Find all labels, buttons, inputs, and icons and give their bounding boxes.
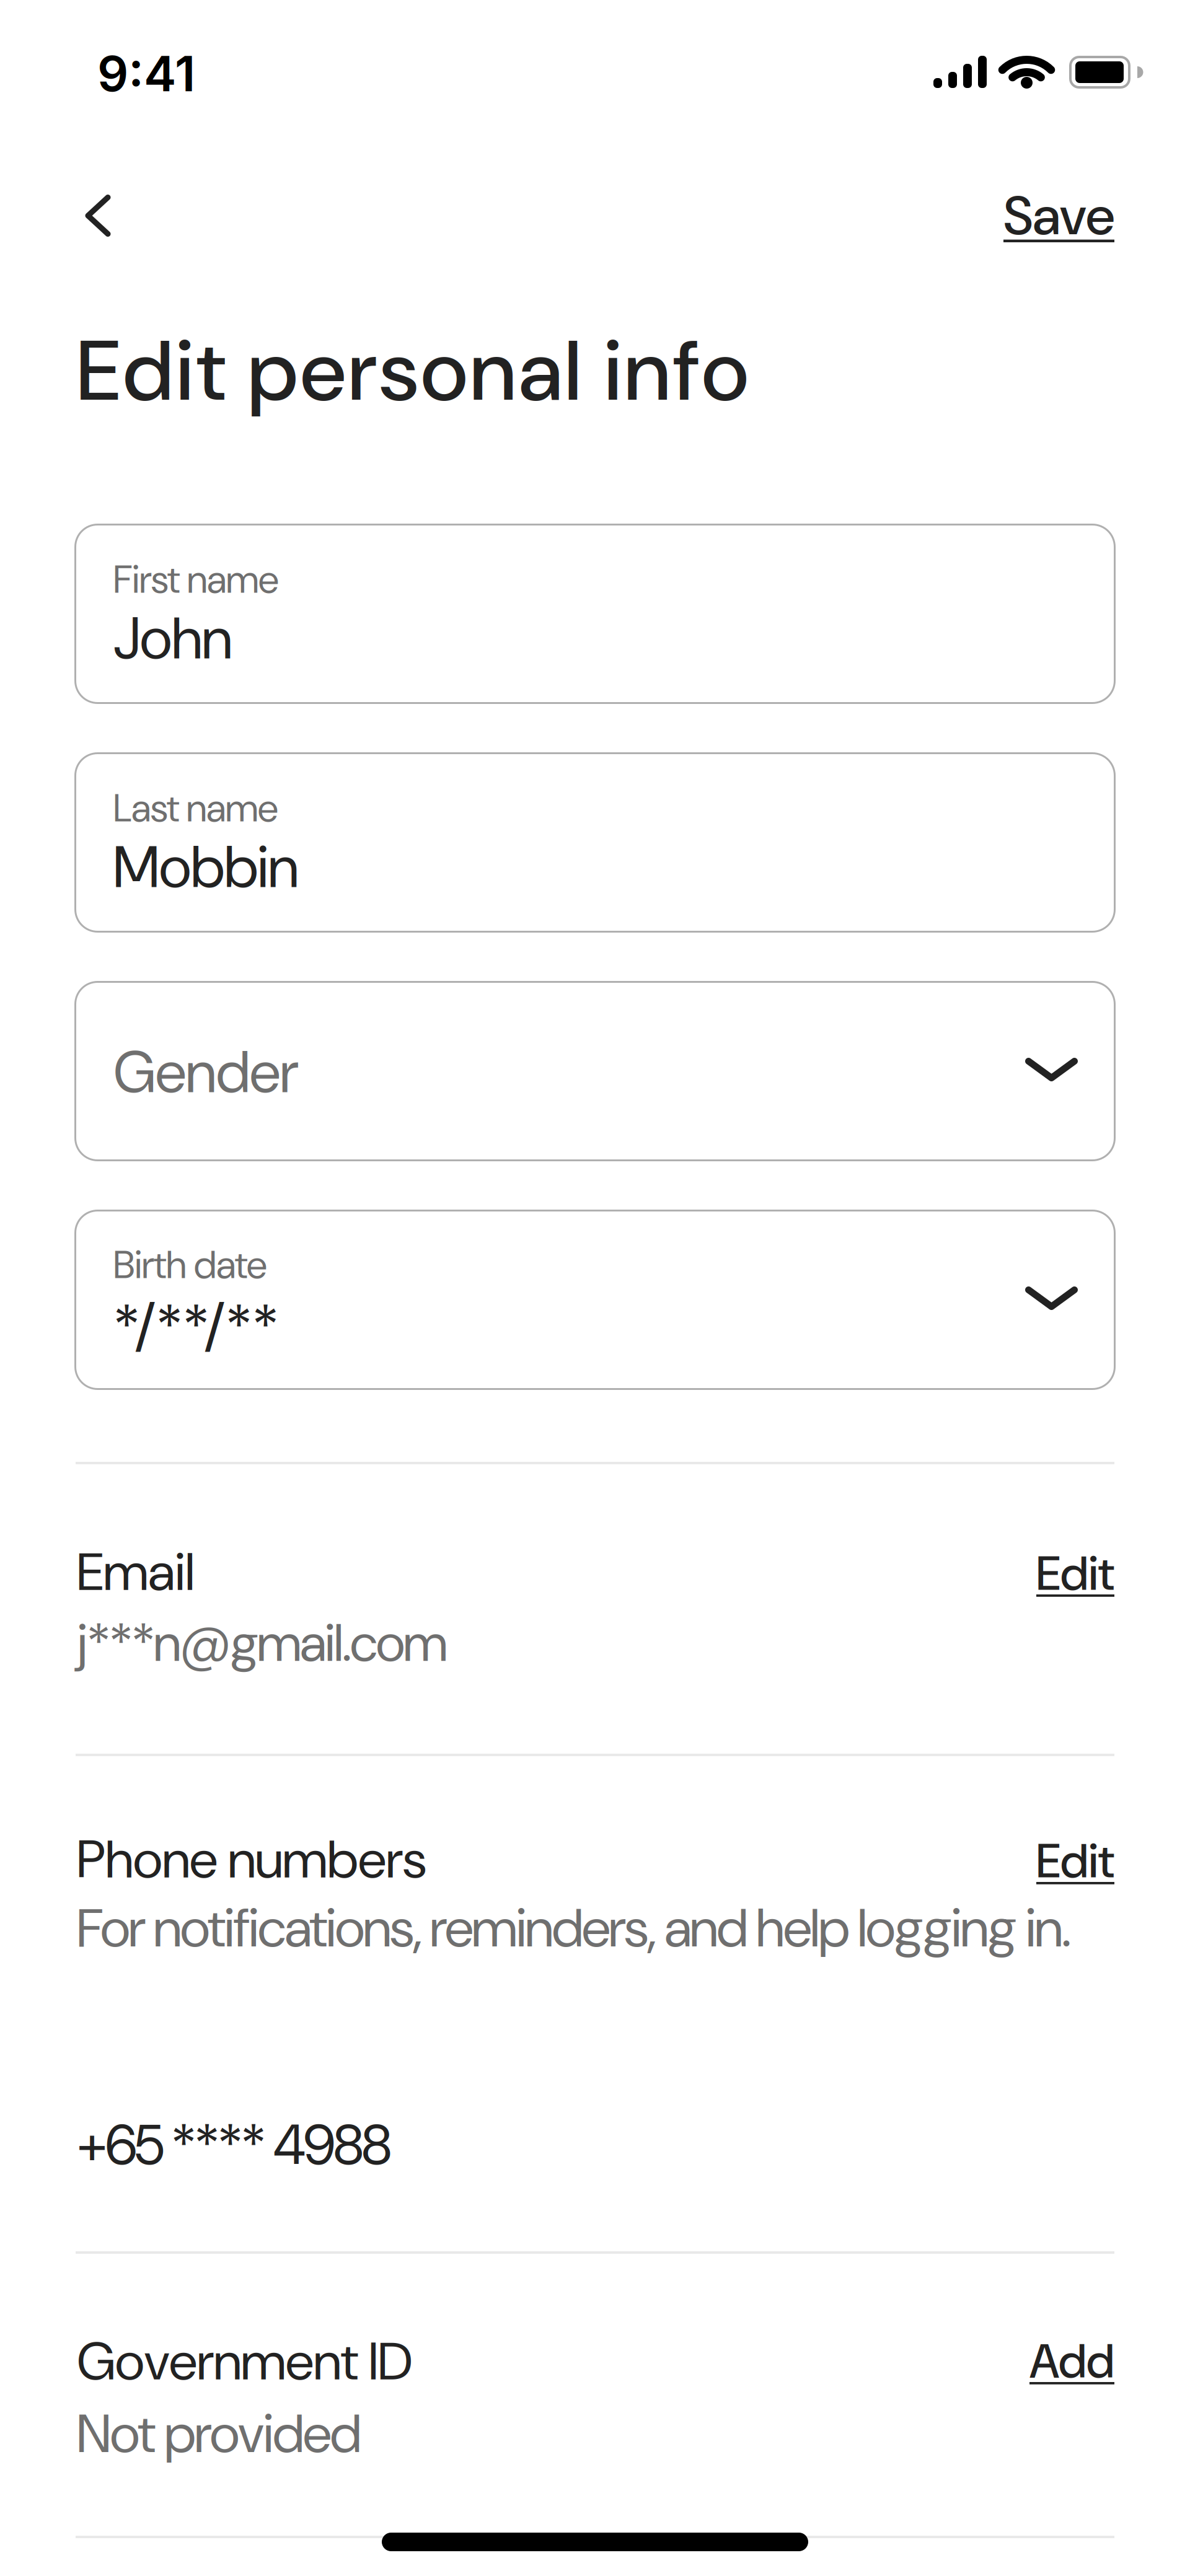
button[interactable]: Gender (74, 981, 1116, 1161)
staticText: Edit personal info (77, 316, 748, 426)
staticText: For notifications, reminders, and help l… (77, 1893, 1071, 1963)
button[interactable]: Birth date (74, 1210, 1116, 1390)
button[interactable]: Edit (1036, 1543, 1114, 1604)
staticText: John (113, 601, 232, 676)
staticText: Mobbin (113, 830, 299, 905)
staticText: Birth date (113, 1240, 267, 1290)
staticText: Save (1003, 181, 1114, 251)
staticText: Phone numbers (77, 1825, 426, 1894)
staticText: Email (77, 1537, 195, 1606)
staticText: Government ID (77, 2327, 413, 2396)
staticText: 9:41 (97, 44, 195, 103)
staticText: Add (1029, 2331, 1114, 2392)
staticText: Last name (113, 783, 278, 833)
button[interactable]: Add (1029, 2331, 1114, 2392)
staticText: Edit (1036, 1543, 1114, 1604)
button[interactable]: Back (81, 191, 118, 240)
staticText: Edit (1036, 1831, 1114, 1892)
staticText: j***n@gmail.com (77, 1609, 447, 1677)
staticText: +65 **** 4988 (77, 2109, 392, 2181)
button[interactable]: Save (1003, 181, 1114, 251)
staticText: */**/** (113, 1289, 279, 1364)
staticText: Gender (113, 1035, 298, 1110)
staticText: First name (113, 555, 278, 605)
staticText: Not provided (77, 2399, 361, 2469)
button[interactable]: Edit (1036, 1831, 1114, 1892)
